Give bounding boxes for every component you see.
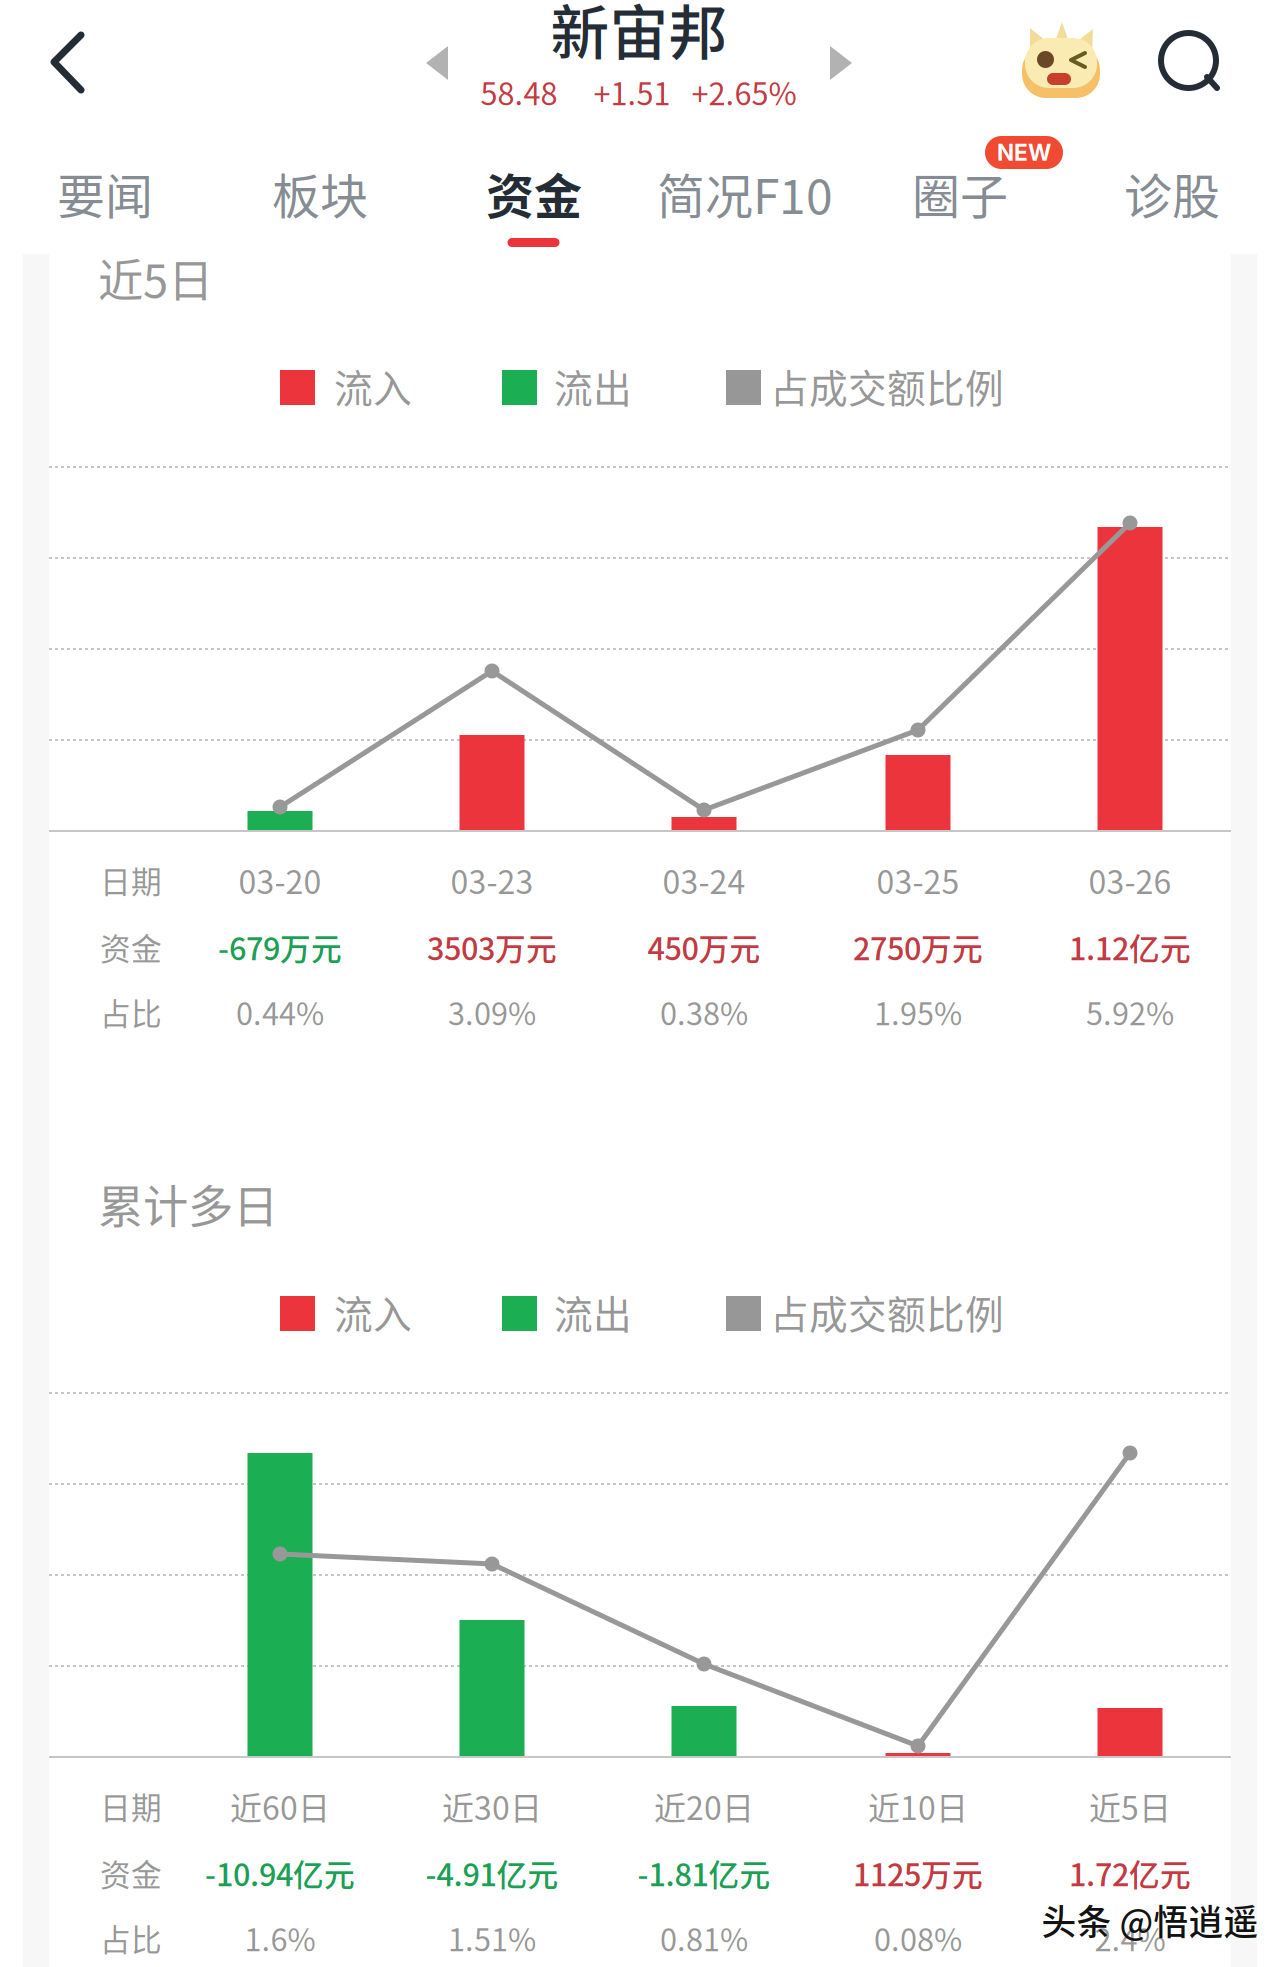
staticText: 3.09%: [448, 990, 536, 1034]
staticText: 资金: [486, 158, 582, 228]
staticText: 近60日: [230, 1783, 330, 1829]
staticText: 03-25: [876, 857, 959, 903]
staticText: 占成交额比例: [770, 358, 1004, 414]
staticText: 要闻: [57, 158, 153, 228]
staticText: -10.94亿元: [205, 1851, 355, 1895]
button[interactable]: Previous stock: [406, 32, 466, 92]
staticText: 占比: [100, 1916, 162, 1960]
staticText: 0.44%: [236, 990, 324, 1034]
staticText: 近20日: [654, 1783, 754, 1829]
staticText: 03-26: [1088, 857, 1171, 903]
staticText: NEW: [997, 139, 1051, 166]
staticText: 5.92%: [1086, 990, 1174, 1034]
button[interactable]: Back: [47, 14, 137, 114]
button[interactable]: 简况F10: [638, 130, 851, 253]
staticText: 3503万元: [427, 925, 557, 969]
staticText: -1.81亿元: [637, 1851, 770, 1895]
button[interactable]: 资金: [427, 130, 640, 253]
staticText: 03-24: [662, 857, 745, 903]
staticText: 流出: [554, 1284, 632, 1340]
staticText: 占成交额比例: [770, 1284, 1004, 1340]
staticText: 简况F10: [657, 158, 833, 228]
staticText: 流入: [334, 1284, 412, 1340]
staticText: 资金: [100, 925, 162, 969]
staticText: 近5日: [98, 245, 213, 311]
button[interactable]: Next stock: [812, 32, 872, 92]
staticText: -4.91亿元: [425, 1851, 558, 1895]
staticText: +2.65%: [691, 70, 796, 114]
staticText: 0.38%: [660, 990, 748, 1034]
staticText: 58.48: [480, 70, 557, 114]
staticText: 03-23: [450, 857, 533, 903]
staticText: 近5日: [1089, 1783, 1171, 1829]
staticText: 累计多日: [98, 1171, 278, 1237]
staticText: 0.81%: [660, 1916, 748, 1960]
button[interactable]: Search: [1153, 19, 1239, 105]
staticText: 头条 @悟逍遥: [1041, 1895, 1258, 1945]
staticText: 1.6%: [244, 1916, 315, 1960]
staticText: 2.4%: [1094, 1916, 1165, 1960]
staticText: 0.08%: [874, 1916, 962, 1960]
staticText: 日期: [100, 1784, 162, 1828]
staticText: 2750万元: [853, 925, 983, 969]
staticText: 1.12亿元: [1069, 925, 1191, 969]
staticText: 1.95%: [874, 990, 962, 1034]
button[interactable]: 诊股: [1065, 130, 1278, 253]
staticText: 近10日: [868, 1783, 968, 1829]
staticText: 新宙邦: [550, 0, 727, 71]
staticText: 1.72亿元: [1069, 1851, 1191, 1895]
staticText: 流出: [554, 358, 632, 414]
staticText: +1.51: [593, 70, 670, 114]
button[interactable]: 要闻: [0, 130, 211, 253]
button[interactable]: Assistant: [1021, 22, 1101, 100]
staticText: 圈子: [912, 158, 1008, 228]
staticText: 板块: [272, 158, 368, 228]
staticText: 1125万元: [853, 1851, 983, 1895]
staticText: 03-20: [238, 857, 321, 903]
staticText: 1.51%: [448, 1916, 536, 1960]
staticText: -679万元: [218, 925, 342, 969]
staticText: 流入: [334, 358, 412, 414]
staticText: 近30日: [442, 1783, 542, 1829]
staticText: 450万元: [647, 925, 760, 969]
staticText: 诊股: [1124, 158, 1220, 228]
staticText: 资金: [100, 1851, 162, 1895]
staticText: 日期: [100, 858, 162, 902]
staticText: 占比: [100, 990, 162, 1034]
button[interactable]: 板块: [213, 130, 426, 253]
button[interactable]: 圈子: [853, 130, 1066, 253]
